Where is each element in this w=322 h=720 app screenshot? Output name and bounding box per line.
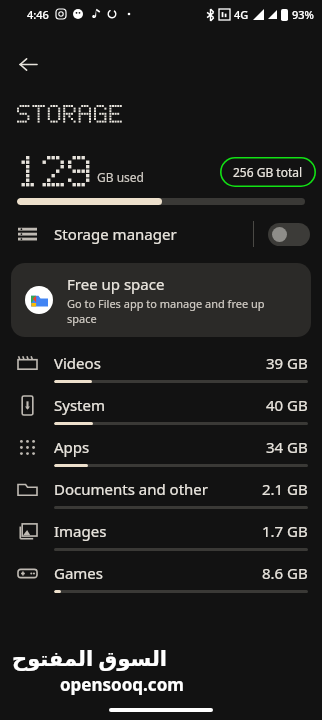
staticText: Free up space xyxy=(67,274,165,294)
button[interactable]: Back xyxy=(8,44,48,84)
button[interactable]: Videos xyxy=(0,345,322,387)
button[interactable]: Storage manager xyxy=(0,205,322,249)
staticText: 93% xyxy=(292,7,314,22)
staticText: السوق المفتوح xyxy=(12,644,168,673)
button[interactable]: Games xyxy=(0,555,322,597)
staticText: Go to Files app to manage and free up sp… xyxy=(67,296,297,326)
staticText: Images xyxy=(54,521,262,541)
button[interactable]: Free up space xyxy=(11,263,311,337)
staticText: 40 GB xyxy=(266,395,308,415)
button[interactable]: Documents and other xyxy=(0,471,322,513)
staticText: opensooq.com xyxy=(60,673,184,696)
staticText: Apps xyxy=(54,437,266,457)
button[interactable]: Apps xyxy=(0,429,322,471)
staticText: 256 GB total xyxy=(233,164,303,180)
staticText: Games xyxy=(54,563,262,583)
button[interactable]: 256 GB total xyxy=(220,157,316,187)
button[interactable]: Storage manager toggle xyxy=(268,223,310,246)
staticText: 2.1 GB xyxy=(262,479,308,499)
staticText: 8.6 GB xyxy=(262,563,308,583)
staticText: Documents and other xyxy=(54,479,262,499)
staticText: 4G xyxy=(234,7,249,22)
staticText: 34 GB xyxy=(266,437,308,457)
staticText: GB used xyxy=(97,169,144,185)
staticText: Storage manager xyxy=(54,224,253,244)
staticText: 1.7 GB xyxy=(262,521,308,541)
staticText: 4:46 xyxy=(27,7,49,22)
staticText: 39 GB xyxy=(266,353,308,373)
staticText: Videos xyxy=(54,353,266,373)
staticText: System xyxy=(54,395,266,415)
button[interactable]: Images xyxy=(0,513,322,555)
button[interactable]: System xyxy=(0,387,322,429)
